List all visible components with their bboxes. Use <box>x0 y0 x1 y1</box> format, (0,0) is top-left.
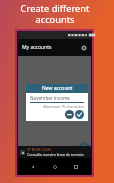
button[interactable]: Recents <box>72 163 80 171</box>
button[interactable]: Cancel <box>65 110 74 119</box>
button[interactable]: Back <box>29 163 37 171</box>
button[interactable]: Add account <box>79 142 90 153</box>
button[interactable]: Settings <box>80 44 88 52</box>
staticText: November income <box>30 95 70 101</box>
button[interactable]: Confirm <box>75 110 84 119</box>
staticText: My accounts <box>22 44 52 51</box>
staticText: New account <box>42 85 73 92</box>
staticText: UP MODE LOGIN <box>27 148 51 152</box>
button[interactable]: Home <box>51 163 59 171</box>
staticText: Maximum 15 characters <box>30 104 84 109</box>
staticText: Consulta nuestra linea de servicio <box>27 152 84 157</box>
staticText: Create different accounts <box>0 2 112 25</box>
